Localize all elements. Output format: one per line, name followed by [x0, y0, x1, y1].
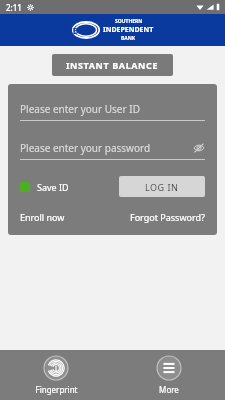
button[interactable]: Please enter your password — [20, 141, 205, 160]
staticText: Enroll now — [20, 211, 65, 223]
button[interactable]: Save ID — [20, 181, 69, 193]
other: Fingerprint login — [44, 356, 68, 380]
staticText: 2:11 — [6, 2, 22, 13]
staticText: Please enter your User ID — [20, 102, 140, 116]
staticText: Save ID — [37, 181, 69, 193]
staticText: INSTANT BALANCE — [66, 59, 159, 71]
button[interactable]: Enroll now — [20, 211, 65, 223]
staticText: INDEPENDENT — [103, 25, 154, 35]
button[interactable]: Fingerprint login — [0, 350, 112, 400]
staticText: Fingerprint — [35, 384, 78, 395]
button[interactable]: More options — [112, 350, 225, 400]
staticText: LOG IN — [145, 181, 179, 193]
other: Show password — [193, 142, 205, 154]
staticText: More — [159, 384, 179, 395]
other: More options — [157, 356, 181, 380]
button[interactable]: Please enter your User ID — [20, 102, 205, 121]
staticText: Please enter your password — [20, 141, 151, 155]
staticText: SIB — [64, 24, 79, 36]
staticText: SOUTHERN — [115, 18, 143, 25]
staticText: BANK — [121, 35, 136, 42]
staticText: Forgot Password? — [130, 211, 205, 223]
button[interactable]: Forgot Password? — [130, 211, 205, 223]
button[interactable]: LOG IN — [119, 176, 205, 197]
button[interactable]: INSTANT BALANCE — [52, 54, 173, 76]
